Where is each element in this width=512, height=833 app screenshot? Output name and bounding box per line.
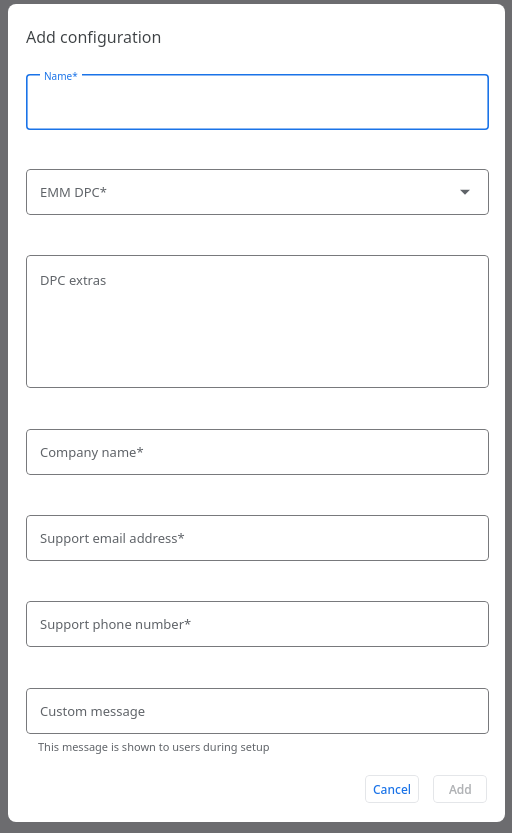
staticText: Name* [44,69,78,83]
staticText: Company name* [40,443,144,461]
button[interactable]: Cancel [365,775,419,803]
staticText: This message is shown to users during se… [38,739,270,754]
button[interactable]: Support phone number* [26,601,489,647]
staticText: Add [449,781,472,797]
button[interactable]: Open EMM DPC dropdown [455,182,475,202]
button[interactable]: DPC extras [26,255,489,388]
button[interactable]: Company name* [26,429,489,475]
staticText: Cancel [373,781,412,797]
staticText: Support phone number* [40,615,192,633]
button[interactable]: EMM DPC* [26,169,489,215]
button[interactable]: Name* [26,74,489,130]
staticText: Add configuration [26,26,162,48]
staticText: DPC extras [40,271,107,289]
button[interactable]: Support email address* [26,515,489,561]
staticText: EMM DPC* [40,183,107,201]
button[interactable]: Custom message [26,688,489,734]
staticText: Support email address* [40,529,185,547]
button[interactable]: Add [433,775,487,803]
staticText: Custom message [40,702,146,720]
